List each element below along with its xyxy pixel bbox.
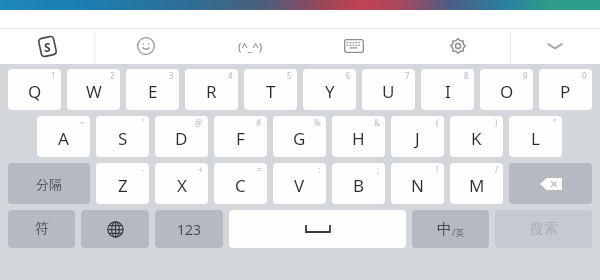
staticText: ; xyxy=(377,164,380,175)
staticText: R xyxy=(206,80,217,103)
staticText: " xyxy=(553,117,557,128)
button[interactable]: D xyxy=(155,116,208,157)
staticText: S xyxy=(118,127,128,150)
button[interactable]: W xyxy=(67,69,120,110)
staticText: = xyxy=(257,164,262,175)
staticText: 3 xyxy=(169,70,174,81)
button[interactable]: Backspace xyxy=(509,163,592,204)
button[interactable]: 中 xyxy=(412,210,489,248)
button[interactable]: 符 xyxy=(8,210,75,248)
staticText: J xyxy=(415,127,420,150)
button[interactable]: G xyxy=(273,116,326,157)
staticText: L xyxy=(531,127,540,150)
staticText: T xyxy=(266,80,276,103)
button[interactable]: H xyxy=(332,116,385,157)
staticText: E xyxy=(148,80,158,103)
button[interactable]: 123 xyxy=(155,210,223,248)
staticText: O xyxy=(500,80,514,103)
staticText: 5 xyxy=(287,70,292,81)
staticText: ~ xyxy=(80,117,85,128)
button[interactable]: A xyxy=(37,116,90,157)
staticText: C xyxy=(235,174,246,197)
staticText: ! xyxy=(436,164,439,175)
button[interactable]: Q xyxy=(8,69,61,110)
staticText: B xyxy=(353,174,365,197)
staticText: & xyxy=(374,117,380,128)
staticText: 4 xyxy=(228,70,233,81)
staticText: N xyxy=(411,174,424,197)
button[interactable]: R xyxy=(185,69,238,110)
staticText: A xyxy=(58,127,69,150)
button[interactable]: F xyxy=(214,116,267,157)
staticText: # xyxy=(256,117,262,128)
button[interactable]: M xyxy=(450,163,503,204)
staticText: % xyxy=(314,117,321,128)
staticText: 分隔 xyxy=(36,176,62,192)
staticText: W xyxy=(86,80,102,103)
staticText: 123 xyxy=(177,220,202,239)
staticText: ' xyxy=(142,117,144,128)
button[interactable]: 分隔 xyxy=(8,163,90,204)
button[interactable]: P xyxy=(539,69,592,110)
staticText: 中 xyxy=(437,220,452,239)
button[interactable]: U xyxy=(362,69,415,110)
staticText: F xyxy=(236,127,245,150)
button[interactable]: Y xyxy=(303,69,356,110)
staticText: @ xyxy=(195,117,203,128)
staticText: 9 xyxy=(523,70,528,81)
button[interactable]: Sogou input method xyxy=(0,28,94,64)
button[interactable]: Z xyxy=(96,163,149,204)
staticText: M xyxy=(469,174,485,197)
button[interactable]: Hide keyboard xyxy=(510,28,600,64)
button[interactable]: E xyxy=(126,69,179,110)
button[interactable]: 搜索 xyxy=(495,210,592,248)
button[interactable]: Space xyxy=(229,210,406,248)
staticText: G xyxy=(293,127,306,150)
staticText: 1 xyxy=(51,70,56,81)
button[interactable]: Settings xyxy=(406,28,510,64)
button[interactable]: O xyxy=(480,69,533,110)
staticText: 8 xyxy=(464,70,469,81)
button[interactable]: I xyxy=(421,69,474,110)
staticText: S xyxy=(44,39,51,55)
staticText: 7 xyxy=(405,70,410,81)
staticText: 6 xyxy=(346,70,351,81)
staticText: D xyxy=(175,127,188,150)
staticText: X xyxy=(177,174,187,197)
button[interactable]: Keyboard layout xyxy=(302,28,406,64)
button[interactable]: L xyxy=(509,116,562,157)
staticText: - xyxy=(141,164,144,175)
staticText: Q xyxy=(28,80,42,103)
staticText: H xyxy=(352,127,365,150)
button[interactable]: S xyxy=(96,116,149,157)
staticText: /英 xyxy=(452,226,465,238)
staticText: 搜索 xyxy=(530,220,558,238)
staticText: V xyxy=(294,174,305,197)
button[interactable]: K xyxy=(450,116,503,157)
button[interactable]: T xyxy=(244,69,297,110)
button[interactable]: Switch language xyxy=(81,210,149,248)
staticText: Y xyxy=(325,80,335,103)
staticText: ) xyxy=(495,117,498,128)
button[interactable]: Kaomoji xyxy=(198,28,302,64)
staticText: U xyxy=(382,80,395,103)
button[interactable]: C xyxy=(214,163,267,204)
button[interactable]: B xyxy=(332,163,385,204)
staticText: (^_^) xyxy=(238,39,263,54)
staticText: ( xyxy=(436,117,439,128)
staticText: / xyxy=(495,164,498,175)
staticText: : xyxy=(318,164,321,175)
staticText: Z xyxy=(118,174,128,197)
staticText: 2 xyxy=(110,70,115,81)
staticText: P xyxy=(560,80,571,103)
staticText: K xyxy=(471,127,482,150)
staticText: 符 xyxy=(35,220,49,238)
button[interactable]: X xyxy=(155,163,208,204)
button[interactable]: Emoji xyxy=(94,28,198,64)
staticText: 0 xyxy=(582,70,587,81)
button[interactable]: J xyxy=(391,116,444,157)
staticText: I xyxy=(445,80,451,103)
staticText: + xyxy=(198,164,203,175)
button[interactable]: V xyxy=(273,163,326,204)
button[interactable]: N xyxy=(391,163,444,204)
